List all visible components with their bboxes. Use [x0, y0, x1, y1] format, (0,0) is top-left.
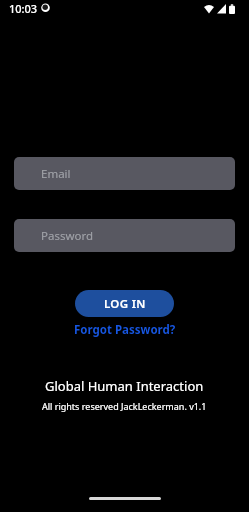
- button[interactable]: Password: [14, 219, 235, 252]
- staticText: Email: [41, 166, 71, 182]
- staticText: All rights reserved JackLeckerman. v1.1: [42, 400, 207, 412]
- button[interactable]: Email: [14, 157, 235, 190]
- button[interactable]: Forgot Password?: [74, 322, 176, 338]
- staticText: LOG IN: [104, 296, 146, 312]
- button[interactable]: LOG IN: [75, 290, 174, 317]
- staticText: 10:03: [9, 1, 38, 16]
- staticText: Global Human Interaction: [45, 377, 204, 395]
- staticText: Password: [41, 228, 94, 244]
